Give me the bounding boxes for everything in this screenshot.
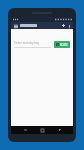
button[interactable]: More options <box>67 24 71 28</box>
button[interactable]: SCAN <box>54 41 70 48</box>
button[interactable]: Recents <box>56 126 64 134</box>
button[interactable]: Add <box>61 23 66 28</box>
button[interactable]: Home <box>38 126 46 134</box>
button[interactable]: Back <box>21 126 29 134</box>
staticText: Enter activity key <box>14 41 40 45</box>
button[interactable] <box>20 24 37 27</box>
button[interactable]: Enter activity key <box>14 41 51 48</box>
button[interactable]: Menu <box>13 23 18 28</box>
staticText: SCAN <box>60 43 68 47</box>
